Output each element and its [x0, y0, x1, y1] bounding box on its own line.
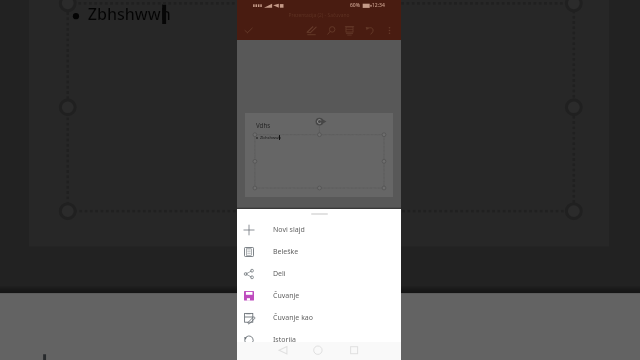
button[interactable]: Istorija: [237, 329, 401, 351]
button[interactable]: Deli: [237, 263, 401, 285]
button[interactable]: Done: [243, 25, 254, 36]
button[interactable]: Novi slajd: [0, 332, 640, 360]
button[interactable]: Draw: [306, 25, 317, 36]
button[interactable]: Beleške: [237, 241, 401, 263]
button[interactable]: Čuvanje kao: [237, 307, 401, 329]
button[interactable]: Novi slajd: [237, 219, 401, 241]
staticText: Čuvanje kao: [273, 313, 314, 323]
staticText: Zbhshwwh: [260, 135, 282, 141]
staticText: Deli: [273, 269, 286, 279]
staticText: Novi slajd: [139, 355, 264, 360]
staticText: Beleške: [273, 247, 299, 257]
staticText: Čuvanje: [273, 291, 300, 301]
staticText: Zbhshwwh: [88, 4, 174, 28]
button[interactable]: Čuvanje: [237, 285, 401, 307]
button[interactable]: Undo: [365, 25, 376, 36]
button[interactable]: Search: [326, 25, 337, 36]
button[interactable]: Slide layout: [344, 25, 355, 36]
staticText: Istorija: [273, 335, 296, 345]
staticText: Novi slajd: [273, 225, 305, 235]
button[interactable]: More options: [384, 25, 395, 36]
staticText: Vdhs: [256, 121, 271, 129]
staticText: 60%: [350, 2, 360, 9]
staticText: 12:34: [372, 2, 385, 9]
